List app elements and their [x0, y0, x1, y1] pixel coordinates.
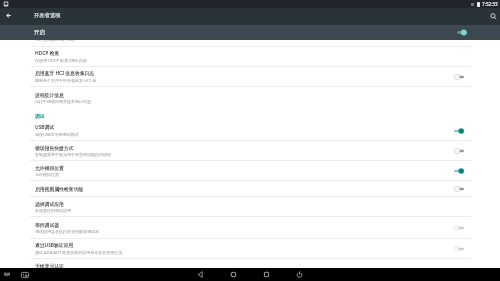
button[interactable]: 错误报告快捷方式 [0, 141, 500, 160]
staticText: 未设置任何调试应用 [35, 208, 71, 213]
button[interactable]: Search [486, 8, 500, 25]
staticText: HDCP 检查 [35, 50, 60, 57]
staticText: 开发者选项 [34, 12, 61, 19]
button[interactable]: 开启 [0, 25, 500, 40]
staticText: 通过USB验证应用 [35, 242, 74, 249]
staticText: 捕获单个文件中的所有蓝牙 HCI 包 [35, 78, 96, 83]
button[interactable]: Back [195, 269, 206, 280]
staticText: 开启 [34, 29, 46, 36]
staticText: 7:52:53 [482, 1, 498, 7]
staticText: 通过 ADB/ADT 检查安装的应用是否存在有害行为。 [35, 250, 127, 255]
button[interactable]: Hide navigation [1, 269, 12, 280]
button[interactable]: Switch keyboard [19, 269, 30, 280]
button[interactable]: Home [228, 269, 239, 280]
button[interactable]: 通过USB验证应用 [0, 239, 500, 258]
button[interactable]: 选择调试应用 [0, 197, 500, 216]
staticText: 在电源菜单中显示用于提交错误报告的按钮 [35, 152, 111, 157]
staticText: 错误报告快捷方式 [35, 145, 74, 151]
button[interactable]: 启用蓝牙 HCI 信息收集日志 [0, 67, 500, 86]
staticText: 仅使用 HDCP 检查 DRM 内容 [35, 58, 88, 63]
staticText: 进程统计信息 [35, 92, 64, 98]
button[interactable]: Recent apps [261, 269, 272, 280]
staticText: 运行中进程的相关技术统计信息 [35, 99, 91, 104]
button[interactable]: 无线显示认证 [0, 259, 500, 279]
staticText: 允许模拟位置 [35, 172, 59, 177]
button[interactable]: 等待调试器 [0, 217, 500, 238]
button[interactable]: Back [0, 7, 16, 24]
staticText: 等待调试器 [35, 222, 59, 228]
staticText: 连接USB后启用调试模式 [35, 132, 79, 137]
button[interactable]: Power [294, 269, 305, 280]
staticText: 允许模拟位置 [35, 165, 64, 171]
button[interactable]: HDCP 检查 [0, 47, 500, 66]
button[interactable]: 允许模拟位置 [0, 161, 500, 180]
staticText: 调试应用会在执行前等待附加调试器 [35, 229, 99, 234]
button[interactable]: USB调试 [0, 121, 500, 140]
button[interactable]: 进程统计信息 [0, 87, 500, 108]
staticText: 启用视图属性检查功能 [35, 186, 83, 192]
staticText: 调试 [35, 113, 45, 119]
staticText: USB调试 [35, 124, 55, 131]
staticText: 无线显示认证 [35, 263, 64, 269]
staticText: 允许通过网络进行调试 [35, 40, 75, 42]
staticText: 启用蓝牙 HCI 信息收集日志 [35, 70, 95, 77]
button[interactable]: 启用视图属性检查功能 [0, 181, 500, 196]
staticText: 选择调试应用 [35, 201, 64, 207]
